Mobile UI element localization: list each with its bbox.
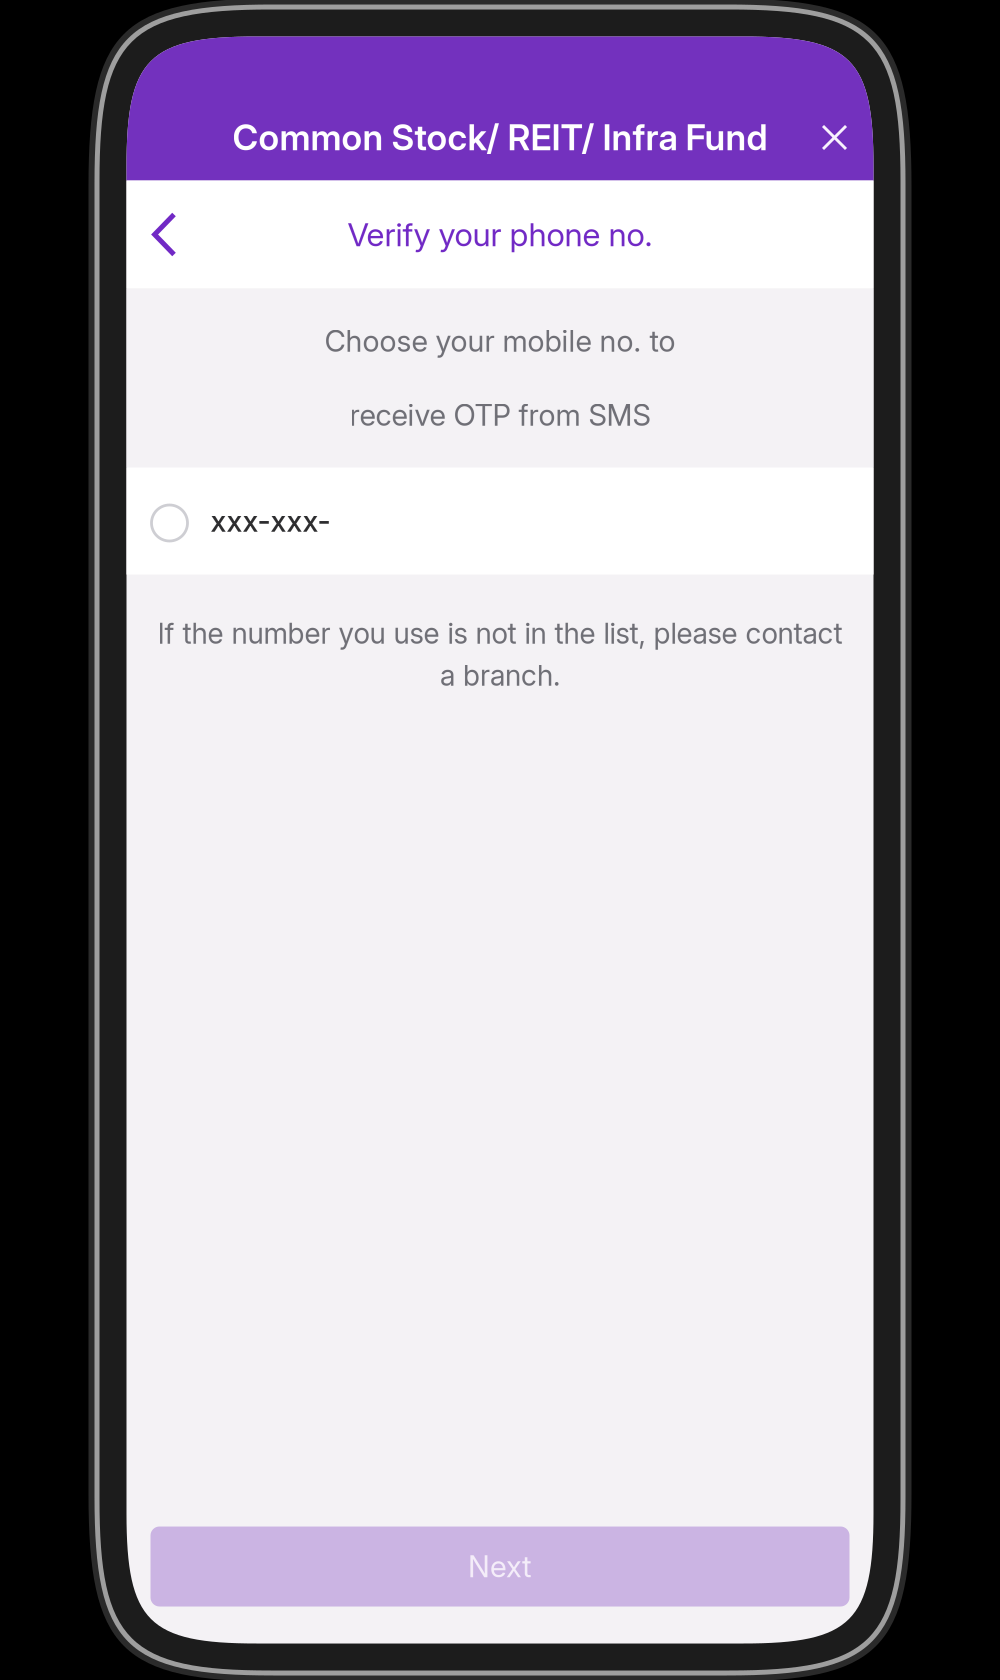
staticText: xxx-xxx- <box>210 503 330 539</box>
staticText: Common Stock/ REIT/ Infra Fund <box>232 116 767 159</box>
staticText: Next <box>468 1548 532 1584</box>
staticText: Choose your mobile no. to <box>324 323 675 359</box>
button[interactable]: Close <box>805 108 863 166</box>
staticText: receive OTP from SMS <box>349 397 650 433</box>
staticText: a branch. <box>440 658 560 693</box>
staticText: If the number you use is not in the list… <box>157 616 842 651</box>
button[interactable]: xxx-xxx- <box>126 467 873 574</box>
button[interactable]: Next <box>150 1526 849 1606</box>
staticText: Verify your phone no. <box>347 215 652 254</box>
button[interactable]: Back <box>127 199 197 269</box>
